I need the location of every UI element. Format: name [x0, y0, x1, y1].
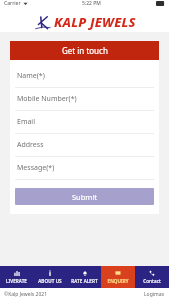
button[interactable]: Address: [10, 134, 159, 157]
staticText: Address: [17, 140, 44, 150]
staticText: ABOUT US: [38, 278, 62, 284]
button[interactable]: Contact: [135, 266, 169, 288]
staticText: Submit: [72, 192, 98, 202]
staticText: Mobile Number(*): [17, 94, 77, 104]
staticText: Logimax: [144, 291, 165, 298]
staticText: LIVERATE: [6, 278, 27, 284]
button[interactable]: LIVERATE: [0, 266, 33, 288]
staticText: RATE ALERT: [71, 278, 98, 284]
staticText: KALP JEWELS: [54, 13, 136, 31]
staticText: Get in touch: [62, 45, 108, 56]
button[interactable]: Mobile Number(*): [10, 88, 159, 111]
staticText: Email: [17, 117, 35, 127]
staticText: Name(*): [17, 71, 45, 81]
button[interactable]: Message(*): [10, 157, 159, 180]
staticText: ENQUIRY: [107, 278, 129, 284]
staticText: ©Kalp Jewels 2021: [4, 291, 47, 298]
button[interactable]: ABOUT US: [33, 266, 67, 288]
button[interactable]: ENQUIRY: [101, 266, 135, 288]
button[interactable]: Submit: [15, 188, 154, 205]
button[interactable]: Get in touch: [10, 41, 159, 60]
button[interactable]: RATE ALERT: [67, 266, 101, 288]
staticText: Contact: [143, 278, 161, 284]
staticText: Carrier: [4, 0, 21, 7]
button[interactable]: Email: [10, 111, 159, 134]
button[interactable]: Name(*): [10, 65, 159, 88]
staticText: Message(*): [17, 163, 55, 173]
staticText: 5:22 PM: [82, 0, 101, 7]
